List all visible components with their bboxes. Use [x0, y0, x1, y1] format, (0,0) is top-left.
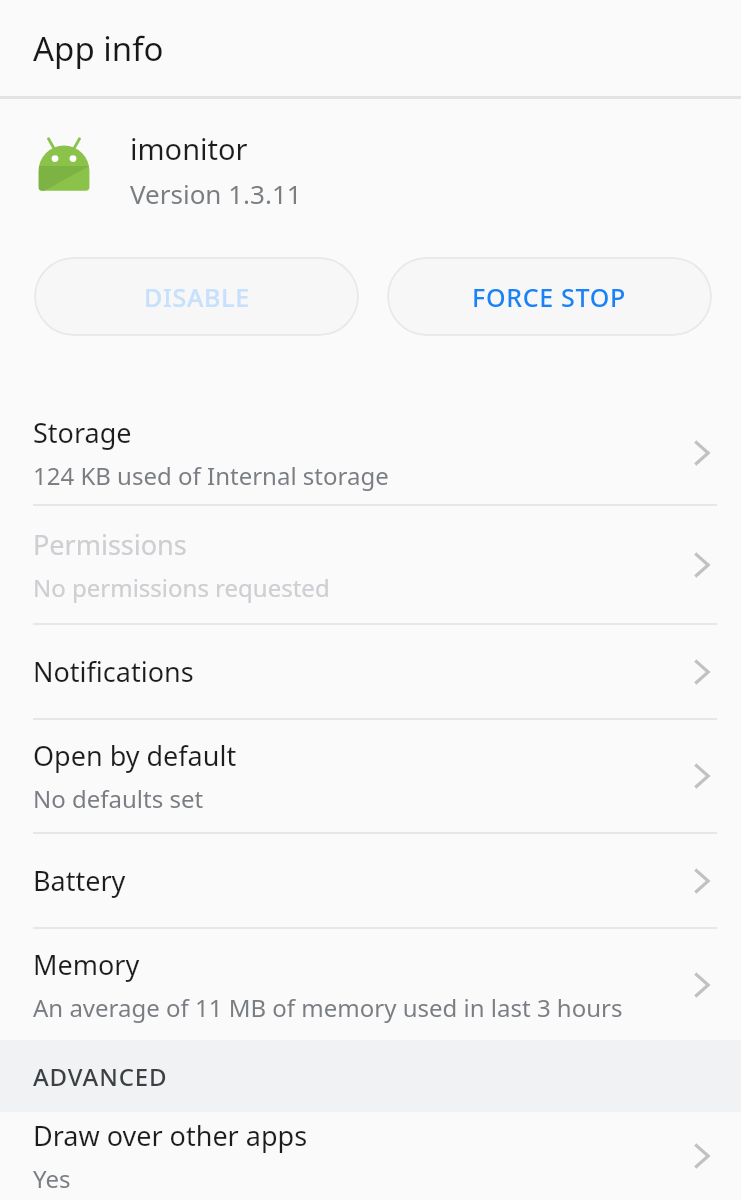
- staticText: Memory: [33, 946, 140, 983]
- button[interactable]: DISABLE: [34, 257, 359, 336]
- staticText: Battery: [33, 862, 126, 899]
- staticText: 124 KB used of Internal storage: [33, 459, 389, 492]
- staticText: No defaults set: [33, 782, 204, 815]
- staticText: Open by default: [33, 737, 237, 774]
- button[interactable]: Memory: [0, 929, 741, 1040]
- button[interactable]: FORCE STOP: [387, 257, 712, 336]
- staticText: Version 1.3.11: [130, 176, 302, 211]
- staticText: Draw over other apps: [33, 1117, 308, 1154]
- button[interactable]: Permissions: [0, 506, 741, 623]
- staticText: An average of 11 MB of memory used in la…: [33, 991, 623, 1024]
- staticText: Yes: [33, 1162, 71, 1195]
- staticText: Permissions: [33, 526, 187, 563]
- button[interactable]: Notifications: [0, 625, 741, 718]
- button[interactable]: Open by default: [0, 720, 741, 832]
- staticText: imonitor: [130, 129, 248, 168]
- button[interactable]: Battery: [0, 834, 741, 927]
- staticText: Notifications: [33, 653, 194, 690]
- button[interactable]: Storage: [0, 402, 741, 504]
- staticText: No permissions requested: [33, 571, 330, 604]
- button[interactable]: Draw over other apps: [0, 1112, 741, 1200]
- staticText: Storage: [33, 414, 132, 451]
- staticText: FORCE STOP: [472, 280, 627, 314]
- staticText: App info: [33, 26, 164, 71]
- staticText: ADVANCED: [33, 1060, 168, 1093]
- staticText: DISABLE: [144, 280, 250, 314]
